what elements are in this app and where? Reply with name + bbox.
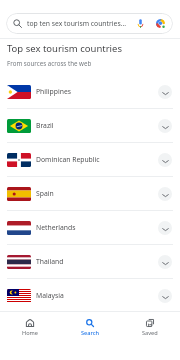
staticText: Brazil <box>36 121 158 130</box>
button[interactable]: Voice search <box>130 13 150 34</box>
staticText: Malaysia <box>36 291 158 300</box>
staticText: top ten sex tourism countries... <box>27 19 130 28</box>
button[interactable]: Netherlands <box>0 211 180 244</box>
button[interactable]: Brazil <box>0 109 180 142</box>
button[interactable]: Saved <box>120 312 180 360</box>
staticText: Thailand <box>36 257 158 266</box>
button[interactable]: Philippines <box>0 75 180 108</box>
staticText: Philippines <box>36 87 158 96</box>
button[interactable]: Search <box>60 312 120 360</box>
button[interactable]: Thailand <box>0 245 180 278</box>
button[interactable]: Search with Google Lens <box>150 13 170 34</box>
button[interactable]: Expand Dominican Republic <box>158 153 172 167</box>
staticText: Dominican Republic <box>36 155 158 164</box>
button[interactable]: Expand Thailand <box>158 255 172 269</box>
button[interactable]: Expand Spain <box>158 187 172 201</box>
staticText: From sources across the web <box>7 59 92 67</box>
button[interactable]: Expand Philippines <box>158 85 172 99</box>
button[interactable]: Spain <box>0 177 180 210</box>
button[interactable]: Expand Netherlands <box>158 221 172 235</box>
staticText: Home <box>22 329 38 337</box>
staticText: Netherlands <box>36 223 158 232</box>
button[interactable]: Home <box>0 312 60 360</box>
staticText: Spain <box>36 189 158 198</box>
staticText: Search <box>81 329 99 337</box>
button[interactable]: Expand Malaysia <box>158 289 172 303</box>
staticText: Saved <box>142 329 158 337</box>
button[interactable]: Malaysia <box>0 279 180 312</box>
button[interactable]: top ten sex tourism countries... <box>6 13 173 34</box>
button[interactable]: Expand Brazil <box>158 119 172 133</box>
button[interactable]: Dominican Republic <box>0 143 180 176</box>
staticText: Top sex tourism countries <box>7 42 122 55</box>
